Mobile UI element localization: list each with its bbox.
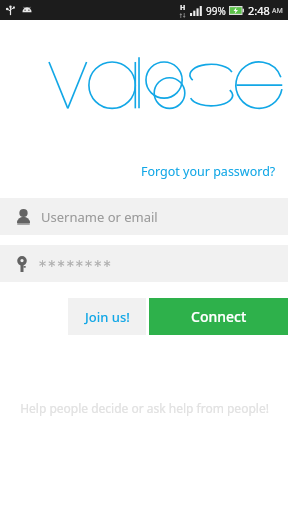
staticText: 2:48: [248, 3, 270, 18]
staticText: AM: [272, 6, 283, 16]
staticText: Help people decide or ask help from peop…: [20, 400, 269, 416]
button[interactable]: Connect: [149, 298, 288, 335]
button[interactable]: Username or email: [0, 198, 288, 235]
button[interactable]: Join us!: [68, 298, 146, 335]
staticText: Join us!: [85, 308, 130, 326]
staticText: Username or email: [41, 208, 158, 226]
staticText: 99%: [206, 4, 226, 18]
staticText: ∗∗∗∗∗∗∗∗: [38, 257, 112, 270]
button[interactable]: Forgot your password?: [139, 161, 278, 182]
staticText: Forgot your password?: [141, 163, 276, 180]
staticText: H: [180, 3, 186, 13]
button[interactable]: ∗∗∗∗∗∗∗∗: [0, 245, 288, 282]
staticText: Connect: [191, 307, 247, 326]
